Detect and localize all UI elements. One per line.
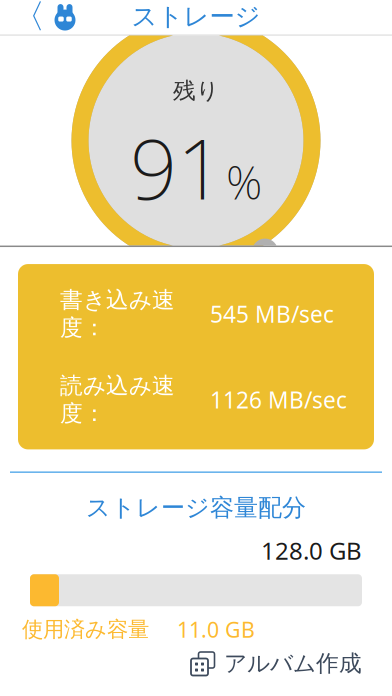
staticText: 545 MB/sec [210,299,334,329]
staticText: % [226,152,262,212]
staticText: 11.0 GB [177,615,255,644]
staticText: 使用済み容量 [22,616,149,642]
staticText: アルバム作成 [224,650,362,677]
staticText: ストレージ容量配分 [86,493,306,522]
staticText: 1126 MB/sec [210,384,347,415]
button[interactable]: 戻る [0,0,78,41]
staticText: 書き込み速度： [60,286,175,342]
button[interactable]: アルバム作成 [184,644,368,683]
staticText: 読み込み速度： [60,372,175,427]
staticText: ストレージ [131,1,260,32]
staticText: 残り [173,77,219,104]
staticText: 91 [130,113,224,222]
staticText: 〈 [12,0,45,37]
staticText: 128.0 GB [261,534,362,566]
